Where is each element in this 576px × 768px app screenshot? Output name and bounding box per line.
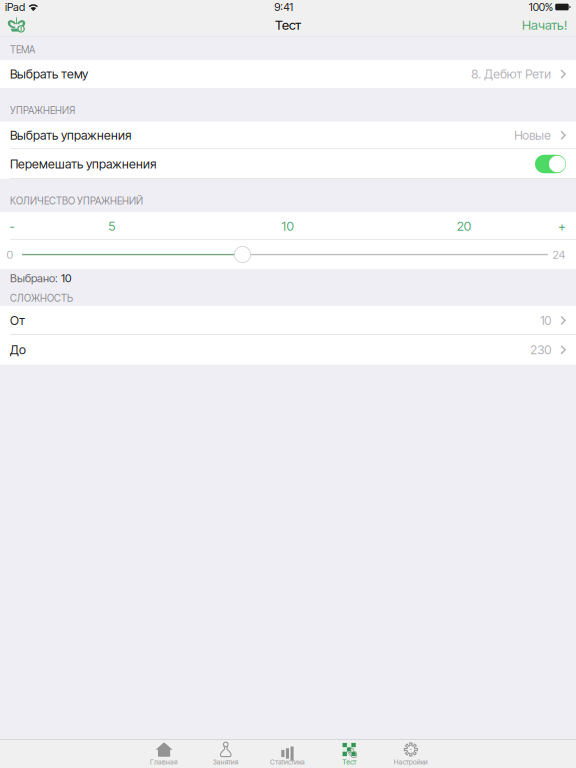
staticText: 100% (529, 0, 553, 14)
staticText: 24 (552, 248, 565, 261)
staticText: От (10, 313, 25, 328)
staticText: Выбрать упражнения (10, 128, 131, 143)
staticText: Начать! (522, 17, 567, 33)
staticText: Тест (275, 17, 301, 33)
staticText: СЛОЖНОСТЬ (10, 292, 73, 304)
staticText: Перемешать упражнения (10, 156, 156, 171)
staticText: 10 (540, 313, 551, 328)
button[interactable]: Статистика (257, 740, 318, 767)
staticText: Главная (150, 758, 178, 766)
button[interactable]: Тест (318, 740, 380, 767)
staticText: 10 (61, 271, 71, 285)
button[interactable]: Выбрать упражнения (0, 121, 576, 149)
staticText: iPad (5, 0, 25, 14)
staticText: Тест (342, 758, 356, 766)
staticText: КОЛИЧЕСТВО УПРАЖНЕНИЙ (10, 195, 143, 207)
button[interactable]: До (0, 335, 576, 365)
button[interactable]: Логотип приложения (0, 14, 33, 36)
staticText: Выбрано: (10, 271, 61, 285)
button[interactable]: 5 (72, 212, 152, 240)
staticText: 9:41 (274, 0, 293, 14)
staticText: Занятия (213, 758, 239, 766)
button[interactable]: От (0, 306, 576, 335)
button[interactable]: + (550, 212, 574, 240)
staticText: Статистика (270, 758, 305, 766)
staticText: - (9, 218, 14, 234)
staticText: 0 (6, 248, 13, 261)
button[interactable]: - (0, 212, 24, 240)
staticText: Выбрать тему (10, 66, 88, 81)
button[interactable]: Настройки (380, 740, 442, 767)
button[interactable]: Перемешать упражнения (0, 149, 576, 179)
button[interactable]: 10 (248, 212, 328, 240)
staticText: До (10, 342, 26, 357)
staticText: УПРАЖНЕНИЯ (10, 104, 75, 116)
button[interactable]: Выбрать тему (0, 60, 576, 88)
button[interactable]: Главная (133, 740, 195, 767)
staticText: 10 (282, 218, 294, 234)
staticText: 5 (108, 218, 115, 234)
button[interactable]: 20 (424, 212, 504, 240)
staticText: Настройки (394, 758, 428, 766)
staticText: 20 (457, 218, 471, 234)
staticText: + (558, 218, 566, 234)
staticText: 230 (530, 342, 551, 357)
staticText: ТЕМА (10, 44, 35, 56)
staticText: Новые (514, 128, 551, 143)
button[interactable]: Начать! (514, 14, 576, 36)
button[interactable]: Занятия (195, 740, 257, 767)
staticText: 8. Дебют Рети (471, 67, 551, 81)
